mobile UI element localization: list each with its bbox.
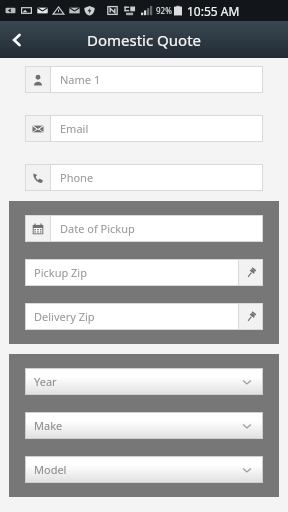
staticText: Date of Pickup [60,221,135,236]
button[interactable]: Model [25,456,263,483]
staticText: Domestic Quote [87,30,202,50]
button[interactable]: Date of Pickup [25,215,263,242]
staticText: Pickup Zip [34,265,87,280]
staticText: Model [34,462,67,477]
staticText: Year [34,374,57,389]
staticText: Delivery Zip [34,309,95,324]
staticText: Phone [60,170,94,185]
button[interactable]: Phone [25,164,263,191]
staticText: Email [60,121,89,136]
button[interactable]: Pickup Zip [25,259,263,286]
staticText: Name 1 [60,72,101,87]
staticText: 92% [156,5,172,16]
button[interactable]: Email [25,115,263,142]
button[interactable]: Delivery Zip [25,303,263,330]
button[interactable]: Name 1 [25,66,263,93]
button[interactable]: Make [25,412,263,439]
staticText: Make [34,418,63,433]
button[interactable]: Back [0,23,34,57]
staticText: 10:55 AM [187,3,240,19]
button[interactable]: Year [25,368,263,395]
